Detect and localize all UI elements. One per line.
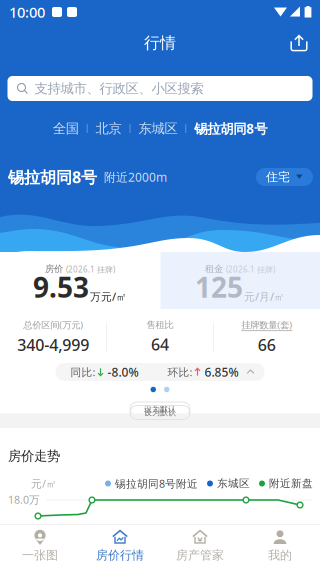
- staticText: 支持城市、行政区、小区搜索: [34, 80, 203, 97]
- button[interactable]: 分享: [283, 27, 315, 59]
- staticText: 挂牌数量(套): [241, 319, 292, 331]
- button[interactable]: 东城区: [136, 120, 179, 137]
- staticText: 锡拉胡同8号附近: [115, 476, 198, 491]
- button[interactable]: 锡拉胡同8号: [192, 120, 269, 137]
- staticText: 环比:: [167, 365, 192, 379]
- button[interactable]: 一张图: [0, 524, 80, 569]
- staticText: 房产管家: [176, 548, 224, 563]
- button[interactable]: 我的: [240, 524, 320, 569]
- staticText: 总价区间(万元): [23, 319, 83, 331]
- staticText: 租金: [205, 263, 223, 275]
- staticText: 住宅: [266, 170, 290, 184]
- staticText: 全国: [53, 120, 79, 137]
- staticText: 125: [195, 268, 243, 306]
- staticText: 9.53: [33, 268, 89, 306]
- staticText: -8.0%: [107, 364, 138, 380]
- button[interactable]: 住宅: [256, 168, 313, 186]
- staticText: 锡拉胡同8号: [8, 166, 97, 188]
- staticText: (2026.1 挂牌): [66, 264, 115, 275]
- staticText: 附近新盘: [269, 477, 313, 490]
- staticText: 北京: [96, 120, 122, 137]
- staticText: 设为默认: [144, 408, 176, 417]
- button[interactable]: 房价行情: [80, 524, 160, 569]
- staticText: 同比:: [70, 365, 95, 379]
- button[interactable]: 设为默认: [130, 402, 190, 416]
- button[interactable]: 设为默认: [130, 405, 190, 419]
- staticText: 340-4,999: [17, 334, 89, 355]
- staticText: 64: [151, 334, 169, 355]
- staticText: 房价行情: [96, 548, 144, 563]
- staticText: 18.0万: [8, 492, 40, 507]
- staticText: 我的: [268, 548, 292, 563]
- staticText: (2026.1 挂牌): [226, 264, 275, 275]
- staticText: 行情: [144, 33, 176, 53]
- staticText: 元/月/㎡: [244, 289, 285, 304]
- button[interactable]: 北京: [94, 120, 124, 137]
- staticText: 66: [258, 334, 276, 355]
- staticText: 6.85%: [204, 364, 238, 380]
- staticText: 设为默认: [144, 404, 176, 414]
- staticText: 房价走势: [8, 448, 60, 464]
- staticText: 元/㎡: [31, 476, 57, 491]
- staticText: 10:00: [9, 2, 45, 22]
- button[interactable]: 支持城市、行政区、小区搜索: [7, 76, 312, 101]
- staticText: 售租比: [146, 319, 173, 331]
- button[interactable]: 房产管家: [160, 524, 240, 569]
- staticText: 附近2000m: [104, 169, 167, 185]
- staticText: 锡拉胡同8号: [194, 120, 267, 137]
- staticText: 一张图: [22, 548, 58, 563]
- staticText: 东城区: [138, 120, 177, 137]
- staticText: 东城区: [217, 477, 250, 490]
- staticText: 万元/㎡: [90, 289, 127, 304]
- staticText: 房价: [45, 263, 63, 275]
- button[interactable]: 全国: [51, 120, 81, 137]
